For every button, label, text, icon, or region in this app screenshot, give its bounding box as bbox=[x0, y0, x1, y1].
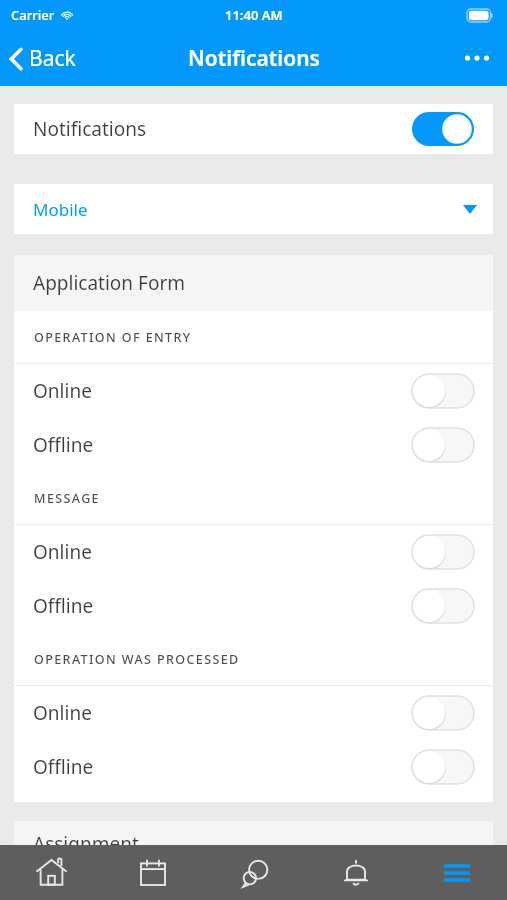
button[interactable]: Offline bbox=[14, 418, 493, 472]
staticText: OPERATION OF ENTRY bbox=[34, 329, 192, 346]
button[interactable]: Notifications bbox=[305, 845, 406, 900]
staticText: OPERATION WAS PROCESSED bbox=[34, 651, 240, 668]
button[interactable]: Toggle off bbox=[412, 374, 474, 408]
button[interactable]: Application Form bbox=[14, 255, 493, 311]
staticText: Application Form bbox=[33, 270, 186, 296]
button[interactable]: Assignment bbox=[14, 821, 493, 866]
staticText: Mobile bbox=[33, 198, 88, 221]
button[interactable]: Toggle off bbox=[412, 696, 474, 730]
button[interactable]: More options bbox=[447, 40, 507, 76]
button[interactable]: Menu bbox=[406, 845, 507, 900]
staticText: Online bbox=[33, 378, 92, 404]
button[interactable]: Toggle off bbox=[412, 589, 474, 623]
button[interactable]: Toggle off bbox=[412, 428, 474, 462]
staticText: Notifications bbox=[33, 116, 147, 142]
button[interactable]: Online bbox=[14, 364, 493, 418]
staticText: Offline bbox=[33, 754, 94, 780]
staticText: Assignment bbox=[33, 831, 139, 857]
staticText: Notifications bbox=[188, 44, 320, 73]
staticText: Carrier bbox=[11, 6, 55, 24]
button[interactable]: Mobile bbox=[14, 184, 493, 234]
button[interactable]: Notifications bbox=[14, 104, 493, 154]
staticText: Online bbox=[33, 700, 92, 726]
button[interactable]: Messages bbox=[204, 845, 305, 900]
button[interactable]: Offline bbox=[14, 740, 493, 794]
button[interactable]: Toggle on bbox=[412, 112, 474, 146]
staticText: 11:40 AM bbox=[225, 6, 283, 24]
button[interactable]: Home bbox=[0, 845, 102, 900]
button[interactable]: Back bbox=[0, 36, 88, 81]
button[interactable]: Toggle off bbox=[412, 750, 474, 784]
staticText: Offline bbox=[33, 432, 94, 458]
staticText: Back bbox=[29, 44, 76, 73]
button[interactable]: Online bbox=[14, 525, 493, 579]
button[interactable]: Online bbox=[14, 686, 493, 740]
staticText: Online bbox=[33, 539, 92, 565]
button[interactable]: Calendar bbox=[102, 845, 204, 900]
button[interactable]: Toggle off bbox=[412, 535, 474, 569]
button[interactable]: Offline bbox=[14, 579, 493, 633]
staticText: Offline bbox=[33, 593, 94, 619]
staticText: MESSAGE bbox=[34, 490, 100, 507]
